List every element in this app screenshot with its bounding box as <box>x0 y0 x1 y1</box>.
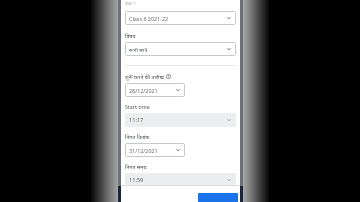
staticText: निगत समय <box>125 163 147 170</box>
button[interactable]: 11:59 <box>125 173 236 187</box>
button[interactable]: 11:17 <box>125 113 236 127</box>
staticText: 11:17 <box>129 116 226 124</box>
staticText: विषय <box>125 32 136 39</box>
button[interactable]: Class 6 2021-22 <box>125 11 236 25</box>
staticText: Class 6 2021-22 <box>129 15 226 22</box>
staticText: 28/12/2021 <box>129 87 175 94</box>
button[interactable]: सभी छात्र <box>125 42 236 56</box>
button[interactable]: 28/12/2021 <box>125 83 185 97</box>
staticText: निगत दिनांक <box>125 133 150 140</box>
staticText: कक्षा * <box>125 1 136 7</box>
staticText: शुरू करने की तारीख <box>125 73 164 80</box>
button[interactable]: Submit <box>198 193 238 202</box>
staticText: Start time <box>125 103 150 110</box>
staticText: सभी छात्र <box>129 46 226 53</box>
staticText: 31/12/2021 <box>129 147 175 154</box>
staticText: 11:59 <box>129 176 226 184</box>
button[interactable]: 31/12/2021 <box>125 143 185 157</box>
